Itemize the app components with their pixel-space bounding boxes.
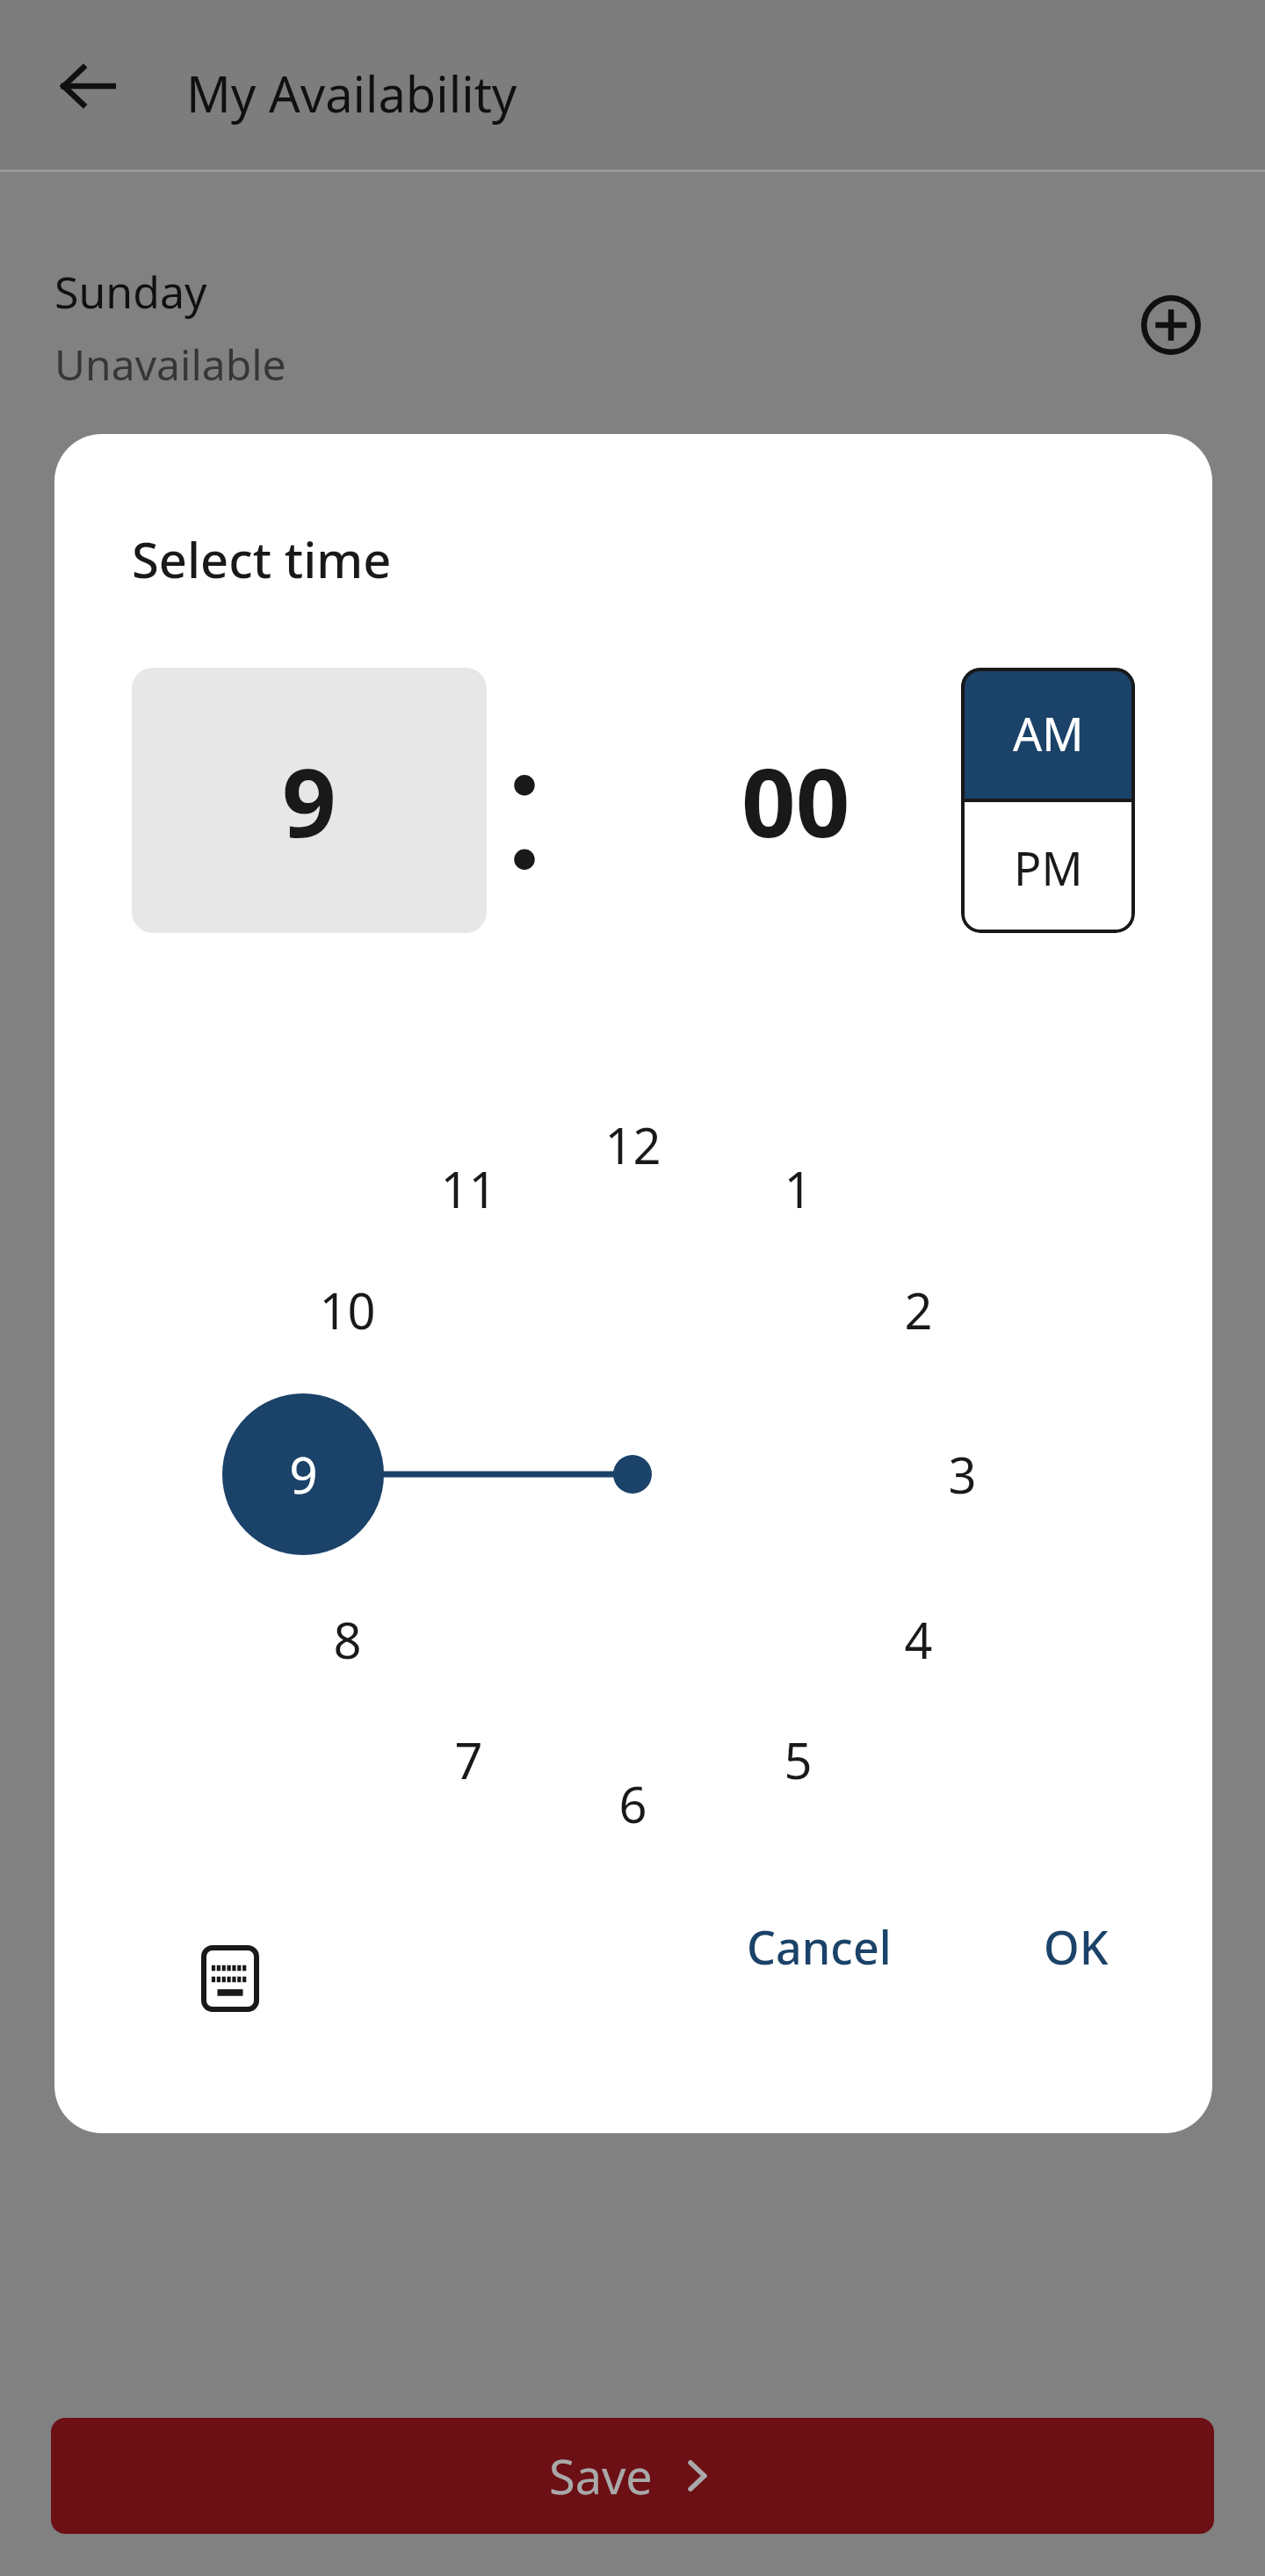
button[interactable]: Switch to text input: [179, 1928, 281, 2030]
button[interactable]: 6: [580, 1751, 685, 1856]
button[interactable]: Add availability: [1129, 283, 1213, 367]
button[interactable]: 12: [580, 1092, 685, 1198]
staticText: 10: [319, 1277, 376, 1343]
staticText: 11: [440, 1155, 497, 1222]
button[interactable]: 8: [294, 1587, 400, 1692]
button[interactable]: 00: [618, 668, 973, 933]
staticText: 6: [618, 1770, 647, 1837]
button[interactable]: 5: [745, 1707, 850, 1813]
button[interactable]: 1: [745, 1136, 850, 1241]
button[interactable]: 2: [865, 1257, 971, 1363]
staticText: 9: [282, 736, 336, 865]
staticText: 1: [784, 1155, 813, 1222]
staticText: My Availability: [186, 60, 517, 127]
staticText: AM: [1013, 702, 1084, 764]
staticText: 8: [333, 1606, 362, 1673]
button[interactable]: 4: [865, 1587, 971, 1692]
staticText: 12: [604, 1111, 661, 1178]
button[interactable]: Back: [46, 44, 130, 128]
button[interactable]: OK: [1021, 1899, 1131, 1994]
staticText: 5: [784, 1726, 813, 1793]
button[interactable]: 7: [416, 1707, 521, 1813]
button[interactable]: 3: [909, 1422, 1015, 1527]
staticText: Unavailable: [54, 336, 286, 393]
staticText: Sunday: [54, 262, 207, 322]
button[interactable]: 9: [250, 1422, 356, 1527]
button[interactable]: Cancel: [724, 1899, 914, 1994]
button[interactable]: AM: [961, 668, 1135, 799]
button[interactable]: 11: [416, 1136, 521, 1241]
staticText: 2: [904, 1277, 933, 1343]
staticText: PM: [1014, 836, 1083, 899]
staticText: 4: [904, 1606, 933, 1673]
staticText: 7: [454, 1726, 483, 1793]
button[interactable]: 10: [294, 1257, 400, 1363]
staticText: 00: [741, 736, 850, 865]
button[interactable]: Save: [51, 2418, 1214, 2534]
staticText: Select time: [132, 525, 392, 592]
staticText: 9: [289, 1441, 318, 1508]
staticText: OK: [1044, 1915, 1109, 1978]
staticText: 3: [948, 1441, 977, 1508]
staticText: Cancel: [747, 1915, 892, 1978]
button[interactable]: PM: [961, 802, 1135, 933]
button[interactable]: 9: [132, 668, 487, 933]
staticText: Save: [549, 2443, 653, 2508]
